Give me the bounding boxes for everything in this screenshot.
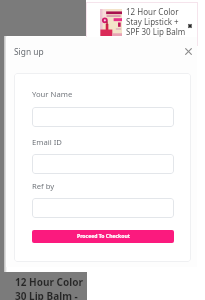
- staticText: 12 Hour Color: [15, 275, 83, 289]
- button[interactable]: [32, 154, 174, 174]
- button[interactable]: [32, 107, 174, 127]
- staticText: 30 Lip Balm -: [15, 289, 78, 300]
- button[interactable]: [32, 198, 174, 218]
- staticText: Your Name: [32, 89, 73, 99]
- staticText: 12 Hour Color Stay Lipstick + SPF 30 Lip…: [126, 6, 186, 37]
- staticText: Email ID: [32, 137, 62, 147]
- staticText: Sign up: [14, 46, 44, 57]
- button[interactable]: Remove: [186, 22, 194, 30]
- button[interactable]: Close: [182, 45, 195, 58]
- button[interactable]: 12 Hour Color Stay Lipstick + SPF 30 Lip…: [86, 2, 198, 46]
- staticText: Proceed To Checkout: [77, 233, 130, 240]
- button[interactable]: Proceed To Checkout: [32, 230, 174, 243]
- staticText: Ref by: [32, 181, 55, 191]
